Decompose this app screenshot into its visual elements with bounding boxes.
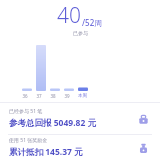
staticText: 参考总回报 5049.82 元 (9, 117, 96, 129)
button[interactable]: 参考总回报详情 (135, 111, 151, 127)
staticText: 累计抵扣 145.37 元 (9, 146, 83, 158)
staticText: 39 (64, 93, 70, 99)
staticText: 本周 (78, 93, 87, 99)
button[interactable]: 累计抵扣详情 (135, 140, 151, 156)
staticText: 40 (57, 1, 81, 30)
staticText: 使用 51 张奖励金 (9, 137, 48, 144)
staticText: 已参与 (73, 30, 88, 36)
staticText: 已经参与 51 笔 (9, 108, 43, 115)
staticText: 38 (50, 93, 56, 99)
staticText: 36 (22, 93, 28, 99)
button[interactable]: 使用 51 张奖励金 (0, 135, 160, 160)
button[interactable]: 已经参与 51 笔 (0, 103, 160, 134)
staticText: 37 (36, 93, 42, 99)
staticText: /52周 (82, 17, 103, 28)
